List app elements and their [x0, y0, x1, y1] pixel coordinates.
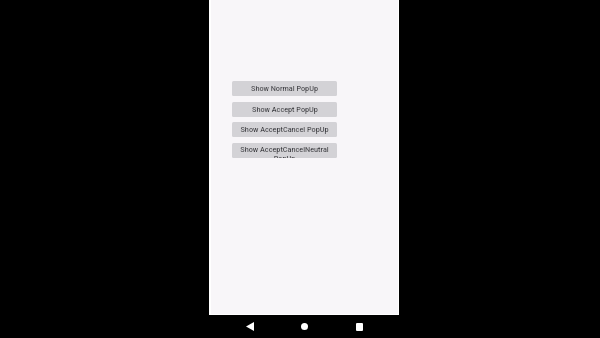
button[interactable]: Show AcceptCancel PopUp: [232, 122, 337, 137]
button[interactable]: Home: [289, 315, 320, 338]
button[interactable]: Show AcceptCancelNeutral PopUp: [232, 143, 337, 158]
button[interactable]: Recent apps: [344, 315, 374, 338]
staticText: Show AcceptCancelNeutral PopUp: [232, 145, 337, 158]
staticText: Show AcceptCancel PopUp: [240, 125, 329, 133]
button[interactable]: Back: [235, 315, 265, 338]
button[interactable]: Show Accept PopUp: [232, 102, 337, 117]
staticText: Show Normal PopUp: [251, 84, 318, 92]
staticText: Show Accept PopUp: [252, 105, 318, 113]
button[interactable]: Show Normal PopUp: [232, 81, 337, 96]
